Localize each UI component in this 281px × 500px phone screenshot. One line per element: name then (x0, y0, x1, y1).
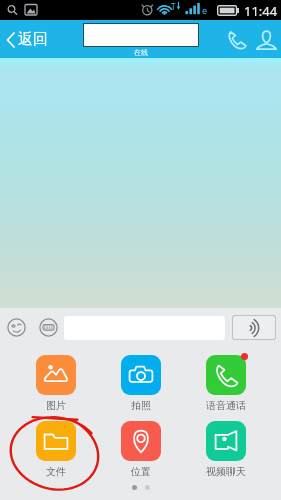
button[interactable]: Voice message (233, 316, 275, 339)
staticText: 文件 (46, 465, 66, 478)
staticText: T (171, 1, 176, 12)
button[interactable]: Contact profile (251, 24, 281, 54)
staticText: 视频聊天 (206, 465, 246, 478)
staticText: 在线 (134, 48, 148, 57)
staticText: 11:44 (244, 2, 278, 20)
staticText: 拍照 (131, 399, 151, 412)
staticText: 返回 (18, 30, 48, 49)
button[interactable]: 语音通话 (183, 355, 268, 412)
staticText: 位置 (131, 465, 151, 478)
button[interactable]: Call (221, 24, 251, 54)
button[interactable]: 返回 (0, 26, 56, 53)
button[interactable]: 视频聊天 (183, 421, 268, 478)
staticText: e (202, 4, 208, 16)
staticText: 图片 (46, 399, 66, 412)
button[interactable]: 位置 (98, 421, 183, 478)
button[interactable]: 文件 (13, 421, 98, 478)
button[interactable]: Emoji (7, 318, 26, 337)
button[interactable]: 图片 (13, 355, 98, 412)
staticText: 语音通话 (206, 399, 246, 412)
button[interactable]: Keyboard (39, 318, 58, 337)
button[interactable]: 拍照 (98, 355, 183, 412)
